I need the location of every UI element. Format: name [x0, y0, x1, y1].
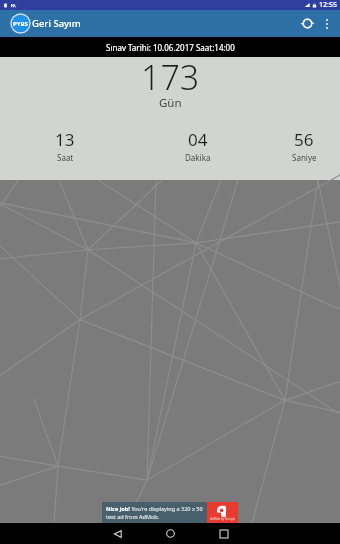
staticText: Saat: [57, 152, 74, 163]
staticText: 56: [294, 128, 314, 151]
staticText: 04: [188, 128, 208, 151]
staticText: 13: [55, 128, 75, 151]
staticText: 12:55: [319, 0, 337, 10]
button[interactable]: Recent apps: [197, 523, 250, 544]
staticText: Sınav Tarihi: 10.06.2017 Saat:14:00: [106, 42, 235, 53]
staticText: Saniye: [292, 152, 317, 163]
staticText: Dakika: [185, 152, 211, 163]
staticText: Nice job!: [106, 505, 130, 512]
staticText: test ad from AdMob.: [106, 513, 160, 520]
staticText: 173: [141, 54, 200, 100]
button[interactable]: Refresh: [294, 10, 321, 37]
button[interactable]: Nice job!: [102, 502, 238, 523]
button[interactable]: Home: [144, 523, 197, 544]
staticText: Gün: [159, 95, 182, 111]
staticText: Geri Sayım: [32, 17, 81, 30]
staticText: AdMob by Google: [210, 517, 236, 521]
button[interactable]: Back: [91, 523, 144, 544]
staticText: PYBS: [13, 20, 28, 28]
button[interactable]: More options: [314, 11, 340, 37]
staticText: You're displaying a 320 x 50: [130, 505, 203, 512]
